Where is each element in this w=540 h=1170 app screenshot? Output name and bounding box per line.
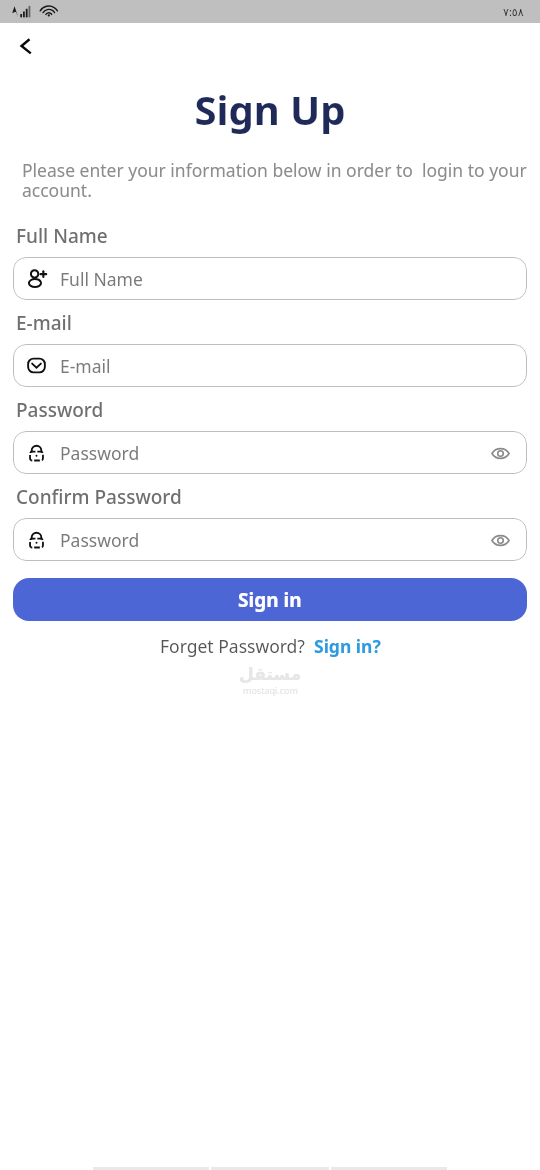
staticText: Please enter your information below in o… xyxy=(22,158,527,202)
staticText: ٧:٥٨ xyxy=(503,4,524,19)
button[interactable]: Show password xyxy=(487,440,513,466)
staticText: E-mail xyxy=(16,310,72,336)
button[interactable]: Back xyxy=(11,31,41,61)
staticText: E-mail xyxy=(60,354,111,378)
staticText: Confirm Password xyxy=(16,484,182,510)
staticText: Full Name xyxy=(16,223,108,249)
staticText: Sign in? xyxy=(314,634,381,658)
button[interactable]: Sign in? xyxy=(314,634,381,658)
button[interactable]: Password xyxy=(13,431,527,474)
button[interactable]: Password xyxy=(13,518,527,561)
staticText: مستقل xyxy=(239,664,302,684)
staticText: mostaqi.com xyxy=(243,684,298,696)
button[interactable]: Full Name xyxy=(13,257,527,300)
button[interactable]: Show password xyxy=(487,527,513,553)
staticText: Forget Password? xyxy=(160,634,305,658)
staticText: Password xyxy=(60,528,140,552)
staticText: Sign Up xyxy=(0,82,540,136)
staticText: Password xyxy=(60,441,140,465)
staticText: Sign in xyxy=(238,587,302,613)
button[interactable]: E-mail xyxy=(13,344,527,387)
button[interactable]: Sign in xyxy=(13,578,527,621)
staticText: Full Name xyxy=(60,267,143,291)
button[interactable]: Forget Password? xyxy=(160,634,305,658)
staticText: Password xyxy=(16,397,104,423)
